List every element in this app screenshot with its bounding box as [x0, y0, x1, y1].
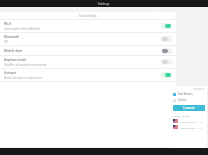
- staticText: Mobile data: [4, 49, 23, 53]
- staticText: Share this device connection: [4, 76, 42, 80]
- staticText: Wi-Fi: [4, 22, 12, 26]
- button[interactable]: Toggle on: [161, 72, 172, 78]
- button[interactable]: Toggle off: [161, 48, 172, 54]
- button[interactable]: United States · 42 ms: [173, 119, 205, 123]
- button[interactable]: Toggle off: [161, 59, 172, 65]
- button[interactable]: Mobile data: [0, 46, 176, 56]
- staticText: United States · 67 ms: [180, 126, 205, 129]
- button[interactable]: Toggle on: [161, 23, 172, 29]
- staticText: Connect: [183, 106, 195, 110]
- button[interactable]: Bluetooth: [0, 33, 176, 46]
- staticText: United States · 42 ms: [180, 120, 205, 123]
- button[interactable]: Fast Servers: [173, 92, 205, 96]
- staticText: Connectivity: [79, 14, 97, 18]
- button[interactable]: Toggle off: [161, 36, 172, 42]
- staticText: Airplane mode: [4, 58, 27, 62]
- staticText: Bluetooth: [4, 35, 20, 39]
- button[interactable]: Secure: [173, 98, 205, 102]
- button[interactable]: United States · 67 ms: [173, 125, 205, 129]
- staticText: Off: [4, 40, 9, 44]
- staticText: Connected to HomeNet-5G: [4, 27, 40, 31]
- staticText: Disables all wireless connections: [4, 63, 47, 67]
- staticText: Settings: [98, 2, 110, 6]
- staticText: Secure: [178, 98, 187, 102]
- staticText: Fast Servers: [178, 92, 193, 96]
- button[interactable]: Hotspot: [0, 69, 176, 82]
- staticText: Recent servers: [173, 114, 191, 117]
- staticText: Hotspot: [4, 71, 17, 75]
- button[interactable]: Connect: [173, 105, 205, 111]
- button[interactable]: Wi-Fi: [0, 20, 176, 33]
- button[interactable]: Airplane mode: [0, 56, 176, 69]
